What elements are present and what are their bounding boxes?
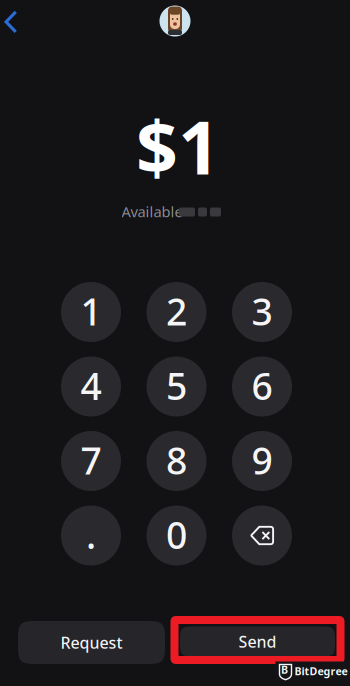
staticText: 1 [80,286,101,336]
button[interactable]: 4 [61,356,121,416]
button[interactable]: 1 [61,282,121,342]
button[interactable]: 5 [146,356,206,416]
staticText: 6 [251,361,272,410]
button[interactable]: 3 [232,282,292,342]
staticText: 7 [80,435,101,485]
staticText: Request [60,632,122,653]
button[interactable]: Profile [159,5,190,36]
button[interactable]: 2 [146,282,206,342]
staticText: Available [121,202,182,221]
button[interactable]: 7 [61,431,121,491]
staticText: B [281,662,288,677]
staticText: 2 [166,286,187,336]
staticText: Send [238,631,276,652]
staticText: BitDegree [294,664,347,678]
staticText: 0 [166,510,187,559]
button[interactable]: Back [0,2,28,42]
button[interactable]: 8 [146,431,206,491]
staticText: 5 [166,361,187,410]
button[interactable]: Delete [232,505,292,565]
staticText: . [86,510,96,559]
button[interactable]: 6 [232,356,292,416]
button[interactable]: 9 [232,431,292,491]
staticText: $1 [136,97,220,195]
button[interactable]: 0 [146,505,206,565]
staticText: 8 [166,435,187,485]
button[interactable]: Request [18,621,165,664]
button[interactable]: . [61,505,121,565]
button[interactable]: Send [180,626,335,656]
staticText: 4 [80,361,101,410]
staticText: 3 [251,286,272,336]
staticText: 9 [251,435,272,485]
